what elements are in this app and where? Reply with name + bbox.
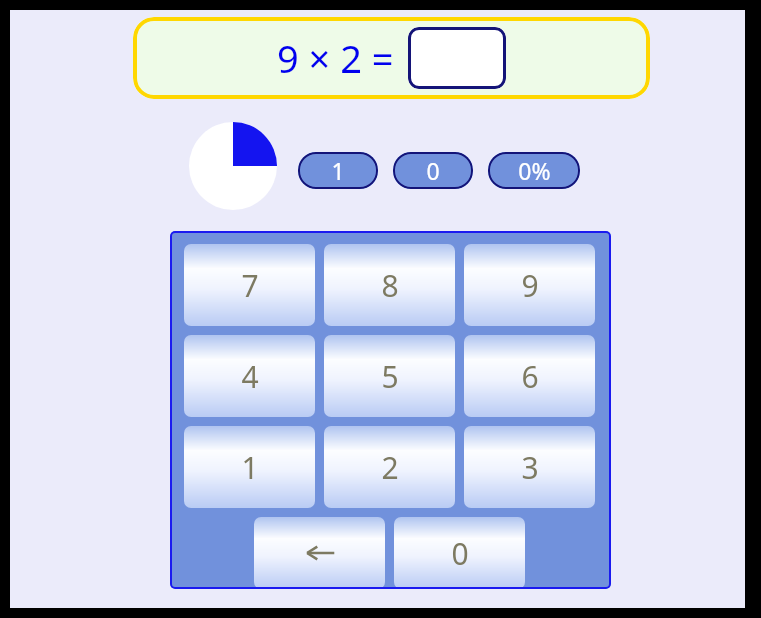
button[interactable]: Backspace bbox=[254, 517, 385, 589]
button[interactable]: 8 bbox=[324, 244, 455, 326]
button[interactable]: 6 bbox=[464, 335, 595, 417]
button[interactable]: Answer input bbox=[408, 27, 506, 89]
staticText: 1 bbox=[331, 155, 345, 186]
staticText: 3 bbox=[521, 447, 539, 488]
staticText: 0 bbox=[451, 533, 469, 574]
button[interactable]: 4 bbox=[184, 335, 315, 417]
button[interactable]: 1 bbox=[184, 426, 315, 508]
button[interactable]: 0 bbox=[393, 152, 473, 189]
staticText: 0 bbox=[426, 155, 440, 186]
staticText: 9 × 2 = bbox=[277, 32, 394, 84]
staticText: 0% bbox=[518, 155, 551, 186]
button[interactable]: 0 bbox=[394, 517, 525, 589]
button[interactable]: 1 bbox=[298, 152, 378, 189]
staticText: 7 bbox=[241, 265, 259, 306]
button[interactable]: 7 bbox=[184, 244, 315, 326]
button[interactable]: 3 bbox=[464, 426, 595, 508]
staticText: 6 bbox=[521, 356, 539, 397]
button[interactable]: 5 bbox=[324, 335, 455, 417]
button[interactable]: 9 bbox=[464, 244, 595, 326]
staticText: 9 bbox=[521, 265, 539, 306]
staticText: 8 bbox=[381, 265, 399, 306]
other: Score pie chart bbox=[189, 122, 277, 210]
staticText: 4 bbox=[241, 356, 259, 397]
staticText: 2 bbox=[381, 447, 399, 488]
button[interactable]: 0% bbox=[488, 152, 580, 189]
staticText: 5 bbox=[381, 356, 399, 397]
button[interactable]: 2 bbox=[324, 426, 455, 508]
staticText: 1 bbox=[241, 447, 259, 488]
button[interactable]: 9 × 2 = bbox=[133, 17, 650, 99]
